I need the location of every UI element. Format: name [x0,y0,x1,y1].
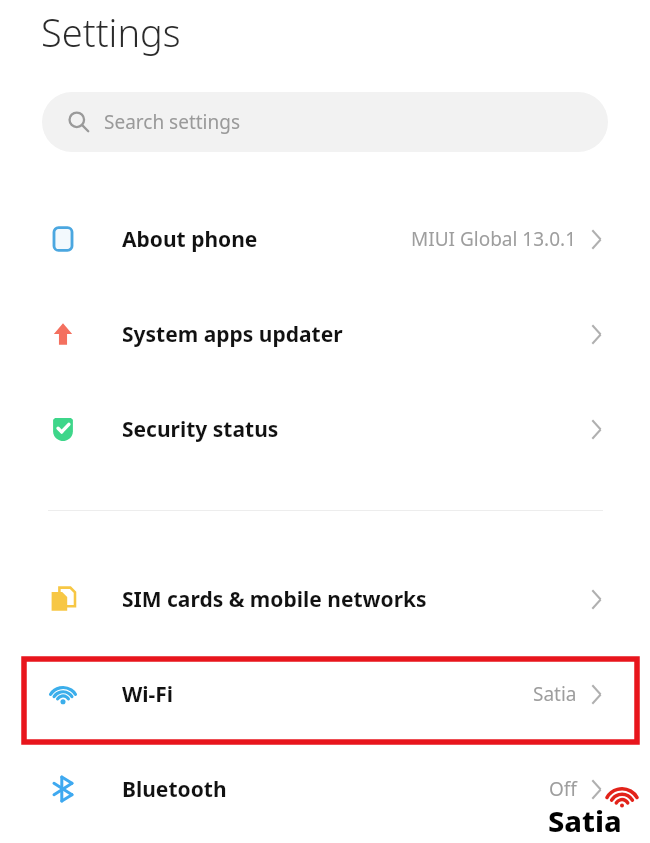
staticText: Search settings [104,109,241,135]
button[interactable]: SIM cards & mobile networks [0,567,650,631]
button[interactable]: Search settings [42,92,608,152]
button[interactable]: Bluetooth [0,757,650,821]
staticText: About phone [122,225,258,254]
staticText: Satia [533,681,577,707]
staticText: MIUI Global 13.0.1 [411,226,577,252]
staticText: Satia [548,801,622,840]
button[interactable]: System apps updater [0,302,650,366]
staticText: Bluetooth [122,775,227,804]
staticText: Settings [41,6,181,58]
button[interactable]: About phone [0,207,650,271]
button[interactable]: Wi-Fi [0,662,650,726]
staticText: SIM cards & mobile networks [122,585,427,614]
staticText: System apps updater [122,320,343,349]
staticText: Security status [122,415,279,444]
staticText: Wi-Fi [122,680,174,709]
staticText: Off [549,776,577,802]
button[interactable]: Security status [0,397,650,461]
